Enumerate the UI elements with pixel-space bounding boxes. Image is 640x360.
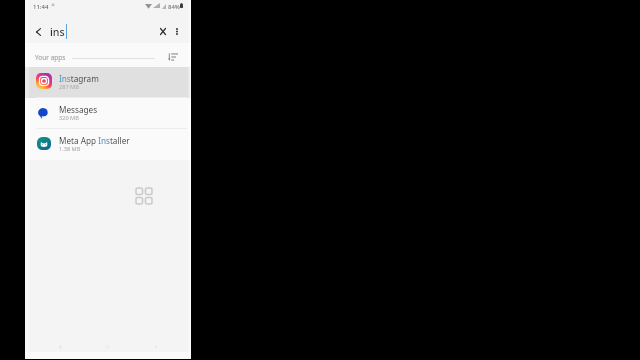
staticText: 84% — [168, 3, 180, 11]
button[interactable]: More options — [167, 21, 187, 41]
staticText: 320 MB — [59, 114, 79, 122]
button[interactable]: Messages — [25, 98, 191, 129]
staticText: 1.38 MB — [59, 145, 81, 153]
staticText: 287 MB — [59, 83, 79, 91]
button[interactable]: Recent apps — [51, 341, 69, 353]
staticText: ins — [50, 25, 65, 39]
staticText: Your apps — [35, 53, 66, 62]
staticText: 11:44 — [33, 3, 49, 11]
button[interactable]: Meta App Installer — [25, 129, 191, 160]
button[interactable]: Back — [28, 21, 49, 42]
button[interactable]: Clear query — [153, 21, 173, 41]
staticText: Meta App Installer — [59, 135, 130, 146]
button[interactable]: Sort — [166, 50, 180, 64]
staticText: Messages — [59, 104, 98, 115]
button[interactable]: Instagram — [25, 67, 191, 98]
staticText: Instagram — [59, 73, 99, 84]
